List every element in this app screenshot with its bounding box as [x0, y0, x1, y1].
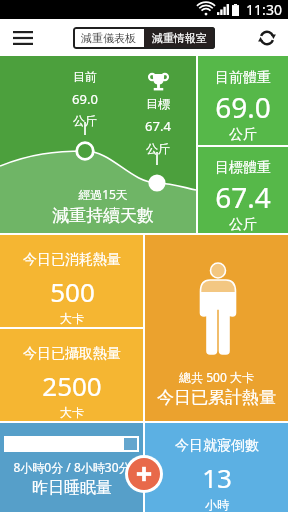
staticText: 今日已累計熱量: [157, 387, 276, 408]
staticText: 公斤: [146, 141, 170, 156]
button[interactable]: 總共 500 大卡: [145, 235, 288, 421]
staticText: 經過15天: [78, 186, 128, 202]
button[interactable]: 今日就寢倒數: [145, 423, 288, 512]
staticText: 今日就寢倒數: [175, 437, 259, 455]
button[interactable]: Refresh: [252, 23, 282, 53]
staticText: 減重情報室: [152, 31, 207, 45]
staticText: 11:30: [246, 0, 282, 19]
button[interactable]: 8小時0分 / 8小時30分: [0, 423, 143, 512]
staticText: 大卡: [60, 405, 84, 420]
staticText: 2500: [42, 368, 102, 403]
staticText: 13: [202, 460, 232, 495]
staticText: 69.0: [215, 88, 271, 126]
staticText: 67.4: [215, 178, 271, 216]
staticText: 目標: [146, 96, 170, 111]
staticText: 目前: [73, 69, 97, 84]
staticText: 大卡: [60, 311, 84, 326]
button[interactable]: Add: [128, 458, 160, 490]
button[interactable]: 目前體重: [198, 56, 288, 145]
staticText: 目前體重: [215, 69, 271, 87]
staticText: 昨日睡眠量: [32, 478, 112, 498]
staticText: 目標體重: [215, 159, 271, 177]
button[interactable]: 今日已消耗熱量: [0, 235, 143, 327]
staticText: 公斤: [73, 113, 97, 128]
button[interactable]: 目標體重: [198, 147, 288, 233]
button[interactable]: 目前: [0, 56, 196, 233]
staticText: 今日已消耗熱量: [23, 251, 121, 269]
staticText: 總共 500 大卡: [179, 369, 254, 385]
staticText: 小時: [205, 497, 229, 512]
staticText: 公斤: [229, 216, 257, 234]
staticText: 500: [50, 274, 95, 309]
staticText: 69.0: [72, 90, 98, 108]
staticText: 今日已攝取熱量: [23, 345, 121, 363]
button[interactable]: 今日已攝取熱量: [0, 329, 143, 421]
button[interactable]: 減重儀表板: [73, 27, 144, 49]
button[interactable]: Menu: [8, 23, 38, 53]
staticText: 減重儀表板: [81, 31, 136, 45]
staticText: 公斤: [229, 126, 257, 144]
staticText: 67.4: [145, 117, 171, 135]
button[interactable]: 減重情報室: [144, 27, 215, 49]
staticText: 8小時0分 / 8小時30分: [13, 459, 131, 475]
staticText: 減重持續天數: [52, 205, 154, 226]
